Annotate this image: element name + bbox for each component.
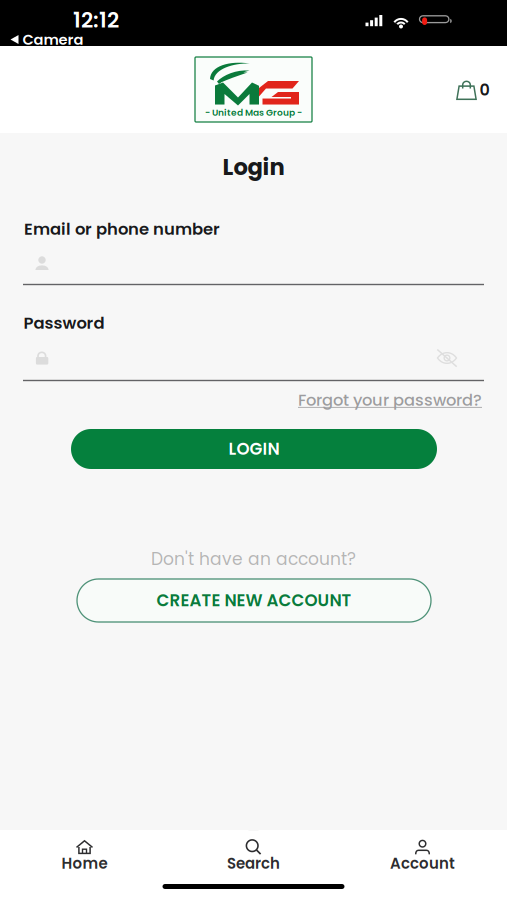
button[interactable]: CREATE NEW ACCOUNT: [77, 579, 431, 622]
button[interactable]: LOGIN: [71, 429, 437, 469]
staticText: CREATE NEW ACCOUNT: [156, 589, 351, 612]
staticText: 12:12: [73, 5, 119, 35]
staticText: Account: [390, 853, 455, 874]
staticText: Don't have an account?: [151, 547, 356, 571]
button[interactable]: Show password: [433, 345, 460, 370]
staticText: LOGIN: [228, 437, 279, 461]
button[interactable]: Forgot your password?: [296, 387, 484, 413]
staticText: Password: [23, 311, 104, 334]
staticText: Search: [227, 853, 280, 874]
button[interactable]: Search: [169, 830, 338, 884]
staticText: Forgot your password?: [298, 389, 482, 411]
button[interactable]: Home: [0, 830, 169, 884]
staticText: - United Mas Group -: [205, 106, 302, 119]
button[interactable]: Cart: [449, 70, 494, 109]
staticText: Login: [222, 151, 284, 183]
staticText: Home: [61, 853, 107, 874]
staticText: Email or phone number: [24, 217, 220, 240]
staticText: 0: [479, 79, 489, 101]
staticText: Camera: [22, 29, 83, 50]
button[interactable]: Account: [338, 830, 507, 884]
